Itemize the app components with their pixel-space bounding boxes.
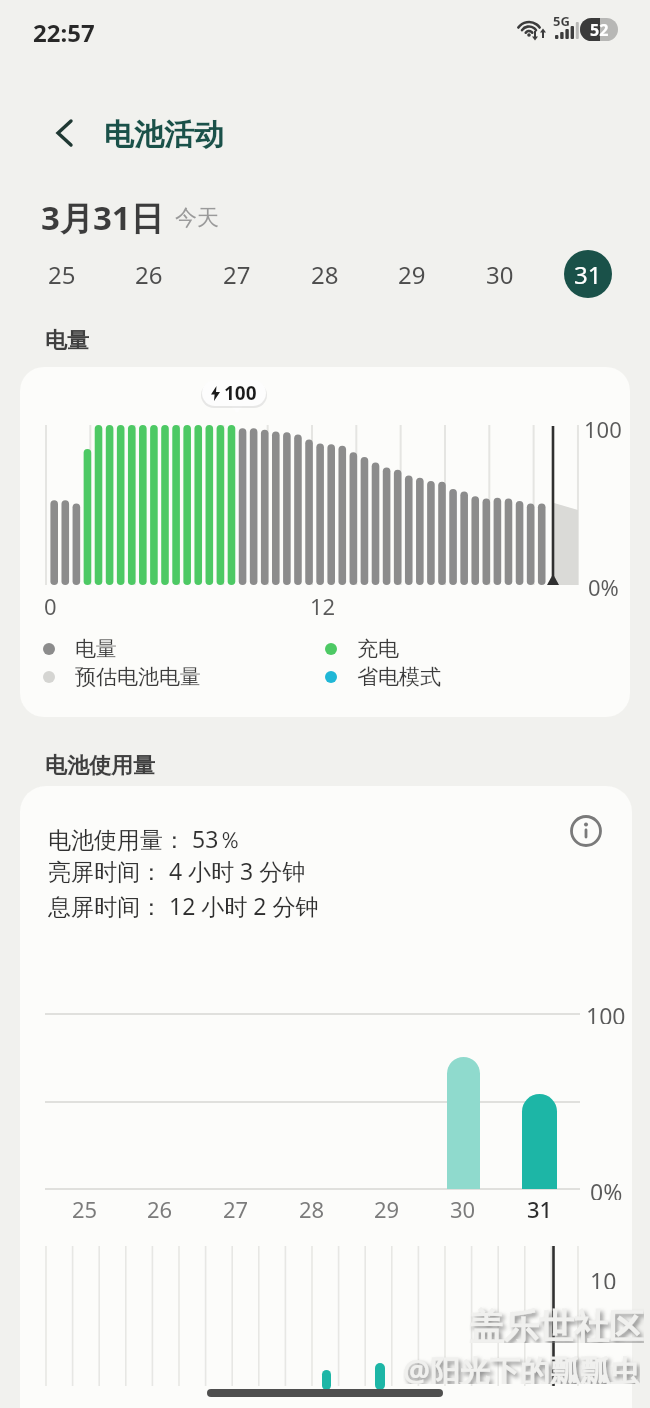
staticText: 省电模式	[357, 664, 441, 690]
staticText: 0	[44, 591, 57, 617]
staticText: 22:57	[33, 16, 95, 44]
staticText: 26	[135, 258, 163, 291]
button[interactable]: 29	[388, 250, 436, 298]
staticText: 100	[224, 380, 257, 406]
button[interactable]: 31	[564, 250, 612, 298]
staticText: 电池活动	[104, 116, 224, 152]
button[interactable]	[207, 1389, 443, 1397]
button[interactable]: 28	[301, 250, 349, 298]
staticText: 31	[527, 1194, 553, 1220]
staticText: 电量	[45, 327, 89, 353]
staticText: 10	[590, 1265, 617, 1289]
staticText: 100	[586, 1000, 626, 1024]
staticText: 0%	[588, 572, 619, 596]
button[interactable]: 25	[38, 250, 86, 298]
staticText: 100	[584, 414, 622, 438]
staticText: 27	[223, 258, 251, 291]
staticText: @阳光下的瓢瓢虫	[403, 1350, 640, 1384]
button[interactable]	[564, 809, 608, 853]
staticText: 30	[450, 1194, 476, 1220]
staticText: 27	[223, 1194, 249, 1220]
staticText: 31	[574, 258, 602, 291]
staticText: 30	[486, 258, 514, 291]
staticText: 28	[299, 1194, 325, 1220]
staticText: 12	[310, 591, 336, 617]
staticText: 29	[374, 1194, 400, 1220]
staticText: 52	[590, 19, 609, 41]
staticText: 电量	[75, 636, 117, 662]
staticText: 电池使用量： 53％	[48, 823, 242, 854]
staticText: 电池使用量	[45, 752, 155, 778]
staticText: 29	[398, 258, 426, 291]
staticText: 0%	[590, 1176, 623, 1200]
staticText: 预估电池电量	[75, 664, 201, 690]
button[interactable]: 27	[213, 250, 261, 298]
button[interactable]: 30	[476, 250, 524, 298]
staticText: 5G	[553, 12, 570, 28]
staticText: 盖乐世社区	[469, 1305, 644, 1343]
staticText: 25	[72, 1194, 98, 1220]
staticText: 25	[48, 258, 76, 291]
staticText: 今天	[175, 204, 219, 232]
button[interactable]: 26	[125, 250, 173, 298]
staticText: 息屏时间： 12 小时 2 分钟	[48, 890, 319, 921]
staticText: 26	[147, 1194, 173, 1220]
button[interactable]	[40, 108, 90, 158]
staticText: 28	[311, 258, 339, 291]
staticText: 亮屏时间： 4 小时 3 分钟	[48, 855, 306, 886]
staticText: 3月31日	[41, 195, 164, 235]
staticText: 充电	[357, 636, 399, 662]
